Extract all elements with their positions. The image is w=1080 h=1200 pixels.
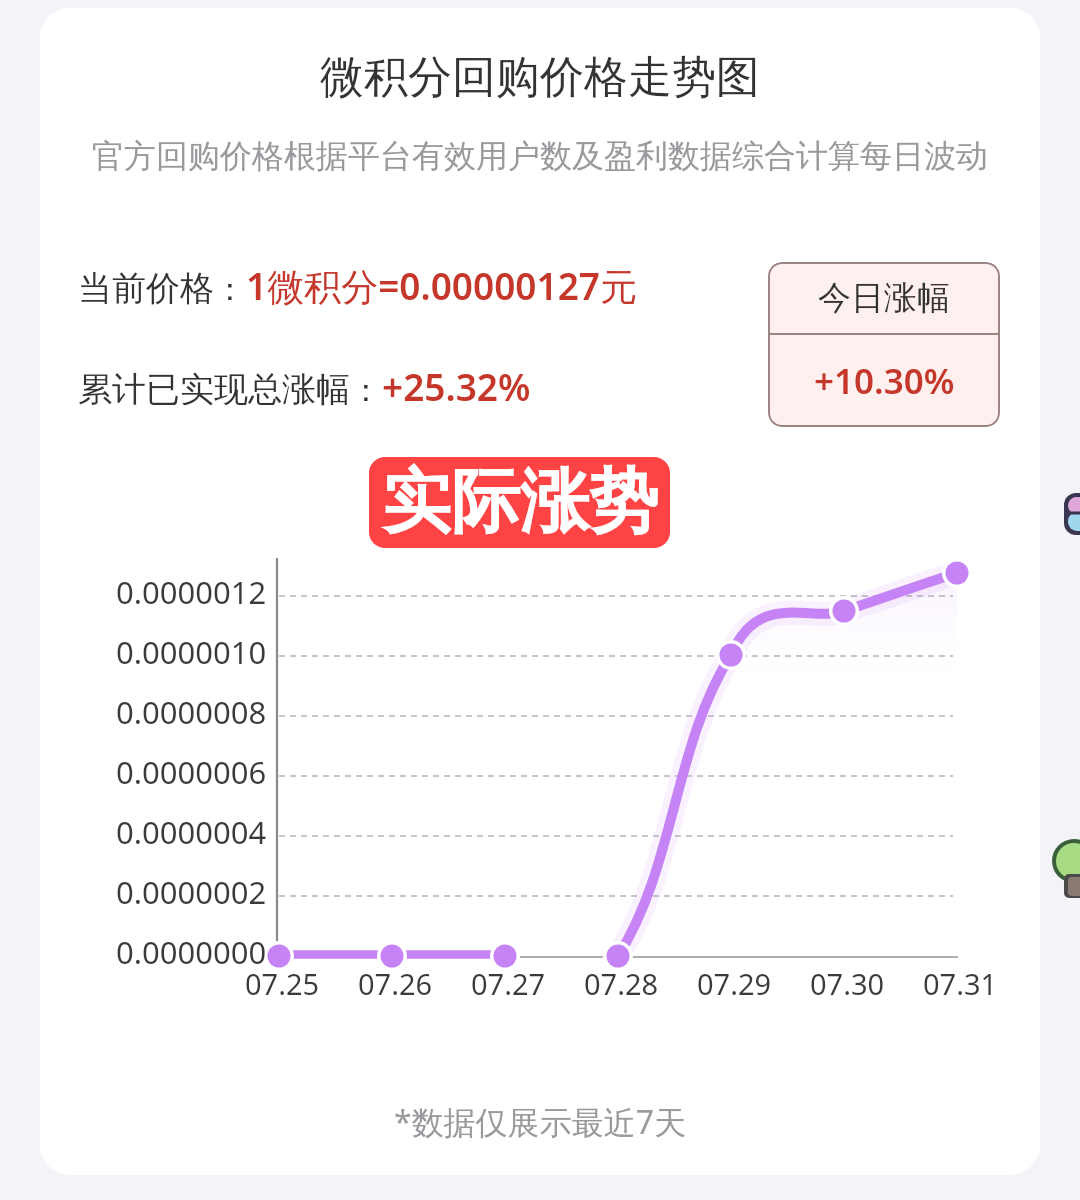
staticText: 0.0000006 xyxy=(116,751,267,793)
staticText: 实际涨势 xyxy=(382,459,658,546)
staticText: 07.28 xyxy=(584,964,659,1003)
staticText: 07.26 xyxy=(358,964,433,1003)
button[interactable]: 实际涨势 xyxy=(369,457,670,548)
staticText: 0.0000002 xyxy=(116,871,267,913)
staticText: 07.30 xyxy=(810,964,885,1003)
other: Gem sticker xyxy=(1062,492,1080,536)
staticText: 0.0000008 xyxy=(116,691,267,733)
staticText: 今日涨幅 xyxy=(818,277,950,319)
staticText: 累计已实现总涨幅：+25.32% xyxy=(78,361,531,411)
staticText: 07.25 xyxy=(245,964,320,1003)
staticText: 0.0000012 xyxy=(116,571,267,613)
staticText: 07.27 xyxy=(471,964,546,1003)
staticText: 0.0000004 xyxy=(116,811,267,853)
staticText: 07.31 xyxy=(923,964,998,1003)
staticText: 0.0000000 xyxy=(116,931,267,973)
staticText: 07.29 xyxy=(697,964,772,1003)
button[interactable]: 今日涨幅 xyxy=(768,262,1000,427)
other: Balloon sticker xyxy=(1058,840,1080,900)
staticText: 微积分回购价格走势图 xyxy=(320,50,760,105)
staticText: 0.0000010 xyxy=(116,631,267,673)
staticText: 官方回购价格根据平台有效用户数及盈利数据综合计算每日波动 xyxy=(92,136,988,176)
staticText: *数据仅展示最近7天 xyxy=(394,1100,686,1144)
staticText: +10.30% xyxy=(814,357,955,405)
staticText: 当前价格：1微积分=0.00000127元 xyxy=(78,260,638,311)
